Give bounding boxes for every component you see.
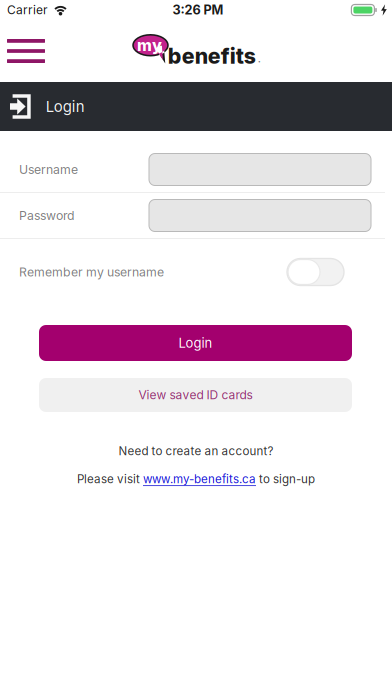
staticText: Login — [46, 97, 85, 116]
staticText: . — [258, 53, 261, 65]
staticText: Carrier — [7, 3, 48, 17]
staticText: Need to create an account? — [118, 444, 273, 458]
staticText: Login — [178, 335, 212, 351]
button[interactable]: Remember my username — [287, 258, 344, 285]
staticText: www.my-benefits.ca — [143, 472, 256, 486]
staticText: my — [137, 35, 162, 55]
staticText: Please visit — [77, 472, 143, 486]
staticText: Remember my username — [19, 265, 164, 279]
staticText: 3:26 PM — [172, 2, 223, 18]
staticText: to sign-up — [256, 472, 315, 486]
staticText: benefits — [168, 43, 256, 69]
button[interactable]: View saved ID cards — [39, 378, 352, 412]
button[interactable]: Login — [39, 325, 352, 361]
button[interactable]: www.my-benefits.ca — [143, 472, 256, 486]
staticText: Username — [19, 162, 78, 177]
staticText: View saved ID cards — [138, 388, 252, 402]
button[interactable]: Menu — [0, 27, 59, 75]
staticText: Password — [19, 208, 75, 223]
